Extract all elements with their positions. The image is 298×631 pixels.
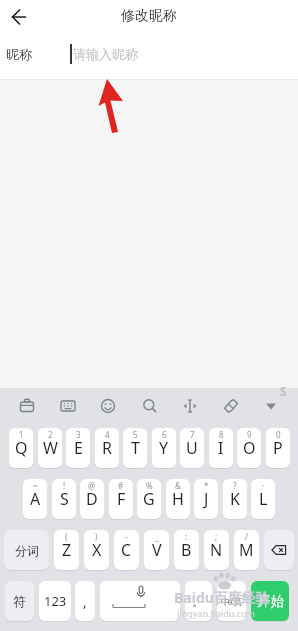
staticText: K: [230, 488, 240, 510]
button[interactable]: J: [194, 479, 218, 519]
button[interactable]: 符: [5, 581, 34, 621]
staticText: 7: [190, 429, 195, 440]
staticText: 符: [13, 593, 26, 609]
button[interactable]: 123: [39, 581, 71, 621]
staticText: 6: [162, 429, 167, 440]
staticText: W: [43, 437, 58, 459]
button[interactable]: 分词: [4, 530, 49, 570]
button[interactable]: ,: [75, 581, 95, 621]
button[interactable]: A: [23, 479, 47, 519]
button[interactable]: K: [223, 479, 247, 519]
button[interactable]: Q: [9, 428, 33, 468]
staticText: *: [204, 480, 209, 491]
button[interactable]: C: [114, 530, 139, 570]
staticText: S: [280, 383, 287, 399]
staticText: 请输入昵称: [73, 46, 138, 62]
staticText: ?: [233, 480, 237, 491]
button[interactable]: 中/英: [217, 581, 246, 621]
button[interactable]: L: [251, 479, 275, 519]
button[interactable]: H: [166, 479, 190, 519]
staticText: F: [117, 488, 126, 510]
button[interactable]: 开始: [251, 581, 289, 621]
button[interactable]: F: [109, 479, 133, 519]
staticText: 2: [48, 429, 53, 440]
staticText: 分词: [15, 543, 39, 558]
staticText: (: [65, 531, 68, 542]
button[interactable]: M: [234, 530, 259, 570]
staticText: S: [60, 488, 69, 510]
staticText: H: [172, 488, 184, 510]
staticText: P: [273, 437, 283, 459]
button[interactable]: [11, 390, 43, 422]
staticText: O: [243, 437, 256, 459]
button[interactable]: 。: [185, 581, 212, 621]
staticText: L: [259, 488, 268, 510]
button[interactable]: [6, 3, 34, 31]
staticText: 123: [44, 592, 67, 610]
button[interactable]: [264, 530, 294, 570]
button[interactable]: W: [38, 428, 62, 468]
staticText: Z: [62, 539, 72, 561]
staticText: -: [125, 531, 128, 542]
staticText: A: [30, 488, 41, 510]
button[interactable]: [92, 390, 124, 422]
button[interactable]: P: [266, 428, 290, 468]
button[interactable]: V: [144, 530, 169, 570]
staticText: 8: [219, 429, 224, 440]
button[interactable]: R: [95, 428, 119, 468]
staticText: #: [118, 480, 124, 491]
button[interactable]: X: [84, 530, 109, 570]
staticText: V: [152, 539, 162, 561]
staticText: _: [155, 531, 159, 542]
staticText: N: [210, 539, 223, 561]
staticText: :: [185, 531, 188, 542]
staticText: ;: [215, 531, 218, 542]
button[interactable]: Z: [54, 530, 79, 570]
button[interactable]: [255, 390, 287, 422]
button[interactable]: Y: [152, 428, 176, 468]
button[interactable]: B: [174, 530, 199, 570]
staticText: Baidu百度经验: [174, 588, 270, 607]
staticText: B: [181, 539, 192, 561]
staticText: 4: [105, 429, 110, 440]
staticText: I: [218, 437, 224, 459]
staticText: C: [121, 539, 132, 561]
staticText: 昵称: [6, 46, 32, 62]
staticText: J: [204, 488, 209, 510]
button[interactable]: 昵称: [0, 36, 298, 72]
staticText: 1: [19, 429, 24, 440]
staticText: U: [186, 437, 198, 459]
staticText: 9: [247, 429, 252, 440]
staticText: jingyan.baidu.com: [177, 607, 255, 619]
button[interactable]: [174, 390, 206, 422]
staticText: ·: [262, 480, 265, 491]
staticText: 修改昵称: [121, 7, 177, 25]
staticText: Y: [159, 437, 169, 459]
button[interactable]: [134, 390, 166, 422]
button[interactable]: N: [204, 530, 229, 570]
staticText: T: [131, 437, 140, 459]
staticText: X: [92, 539, 102, 561]
staticText: !: [63, 480, 66, 491]
staticText: 3: [76, 429, 81, 440]
button[interactable]: S: [52, 479, 76, 519]
staticText: 中/英: [221, 595, 243, 607]
staticText: R: [102, 437, 112, 459]
button[interactable]: G: [137, 479, 161, 519]
button[interactable]: [52, 390, 84, 422]
staticText: G: [143, 488, 155, 510]
staticText: ): [95, 531, 98, 542]
button[interactable]: U: [180, 428, 204, 468]
staticText: @: [88, 480, 96, 491]
staticText: &: [175, 480, 181, 491]
button[interactable]: [215, 390, 247, 422]
button[interactable]: I: [209, 428, 233, 468]
staticText: 。: [192, 593, 205, 609]
staticText: M: [239, 539, 254, 561]
button[interactable]: [100, 581, 180, 621]
button[interactable]: T: [123, 428, 147, 468]
button[interactable]: O: [237, 428, 261, 468]
staticText: %: [146, 480, 153, 491]
button[interactable]: D: [80, 479, 104, 519]
button[interactable]: E: [66, 428, 90, 468]
